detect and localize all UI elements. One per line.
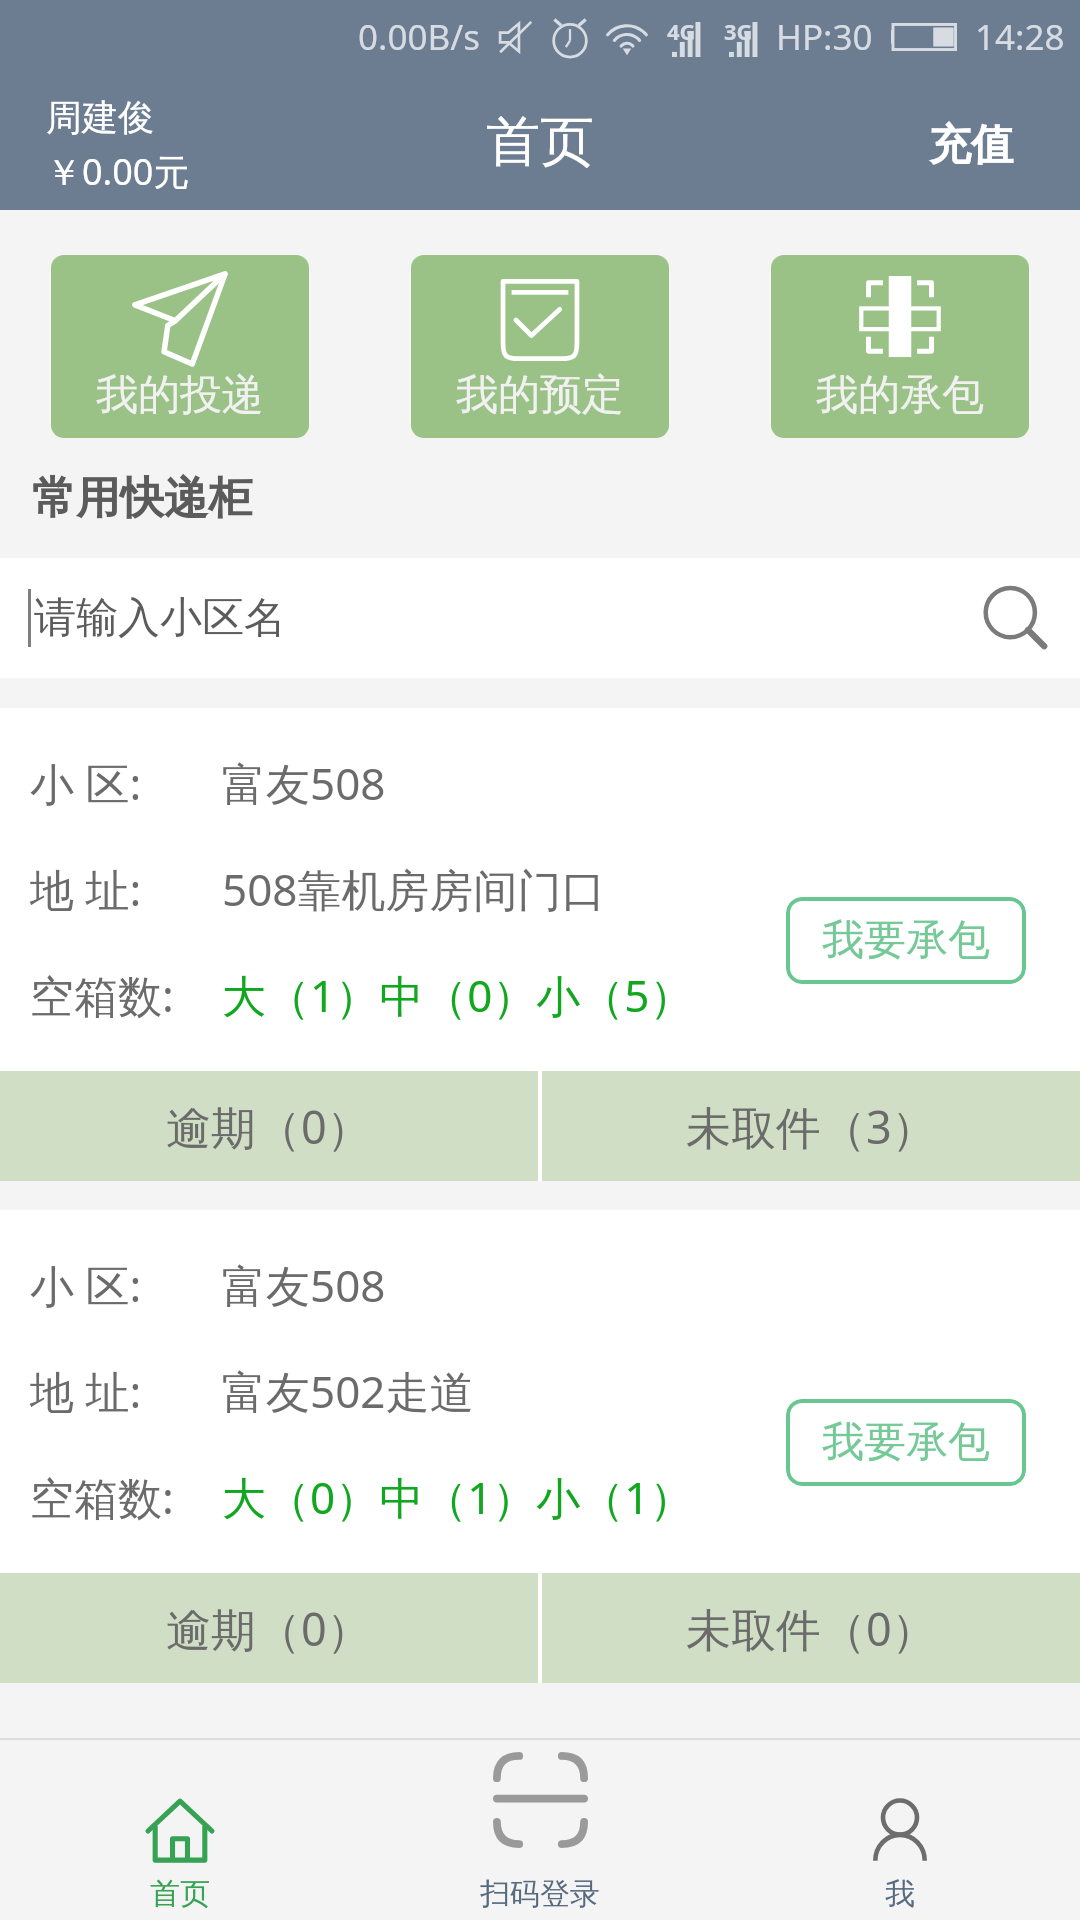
- staticText: 我的预定: [456, 369, 624, 422]
- staticText: 地 址:: [30, 1361, 142, 1421]
- staticText: 我要承包: [822, 914, 990, 967]
- staticText: 大（0）中（1）小（1）: [222, 1467, 694, 1527]
- staticText: ￥0.00元: [46, 147, 190, 196]
- staticText: 3G: [724, 16, 753, 46]
- staticText: 我的承包: [816, 369, 984, 422]
- staticText: 我: [885, 1875, 915, 1913]
- staticText: 首页: [486, 108, 594, 176]
- button[interactable]: 我的预定: [411, 255, 669, 438]
- staticText: 请输入小区名: [34, 592, 286, 645]
- staticText: 未取件（3）: [686, 1096, 937, 1157]
- button[interactable]: 我的承包: [771, 255, 1029, 438]
- button[interactable]: 首页: [0, 1740, 360, 1920]
- button[interactable]: 未取件（0）: [542, 1573, 1080, 1683]
- button[interactable]: 我: [720, 1740, 1080, 1920]
- staticText: 富友502走道: [222, 1361, 474, 1421]
- button[interactable]: 充值: [899, 113, 1080, 178]
- staticText: 常用快递柜: [32, 471, 252, 526]
- button[interactable]: 周建俊: [46, 95, 190, 196]
- staticText: 4G: [667, 16, 696, 46]
- staticText: 未取件（0）: [686, 1598, 937, 1659]
- staticText: 周建俊: [46, 95, 154, 140]
- staticText: 富友508: [222, 753, 386, 813]
- staticText: 0.00B/s: [358, 13, 480, 61]
- staticText: 扫码登录: [480, 1875, 600, 1913]
- button[interactable]: 我要承包: [786, 897, 1026, 984]
- button[interactable]: 我要承包: [786, 1399, 1026, 1486]
- button[interactable]: 逾期（0）: [0, 1573, 538, 1683]
- staticText: 小 区:: [30, 1255, 142, 1315]
- button[interactable]: 扫码登录: [360, 1740, 720, 1920]
- staticText: 充值: [929, 119, 1013, 172]
- staticText: 我要承包: [822, 1416, 990, 1469]
- staticText: 富友508: [222, 1255, 386, 1315]
- staticText: 地 址:: [30, 859, 142, 919]
- button[interactable]: 我的投递: [51, 255, 309, 438]
- other: Search: [986, 588, 1046, 648]
- button[interactable]: 逾期（0）: [0, 1071, 538, 1181]
- button[interactable]: 请输入小区名: [28, 558, 1046, 678]
- button[interactable]: 未取件（3）: [542, 1071, 1080, 1181]
- staticText: 14:28: [975, 13, 1065, 61]
- button[interactable]: 小 区:: [0, 708, 1080, 1071]
- staticText: 大（1）中（0）小（5）: [222, 965, 694, 1025]
- staticText: 首页: [150, 1875, 210, 1913]
- button[interactable]: 小 区:: [0, 1210, 1080, 1573]
- staticText: 我的投递: [96, 369, 264, 422]
- staticText: 小 区:: [30, 753, 142, 813]
- staticText: 空箱数:: [30, 965, 174, 1025]
- staticText: 空箱数:: [30, 1467, 174, 1527]
- staticText: 逾期（0）: [166, 1598, 372, 1659]
- staticText: 508靠机房房间门口: [222, 859, 606, 919]
- staticText: HP:30: [776, 13, 873, 61]
- staticText: 逾期（0）: [166, 1096, 372, 1157]
